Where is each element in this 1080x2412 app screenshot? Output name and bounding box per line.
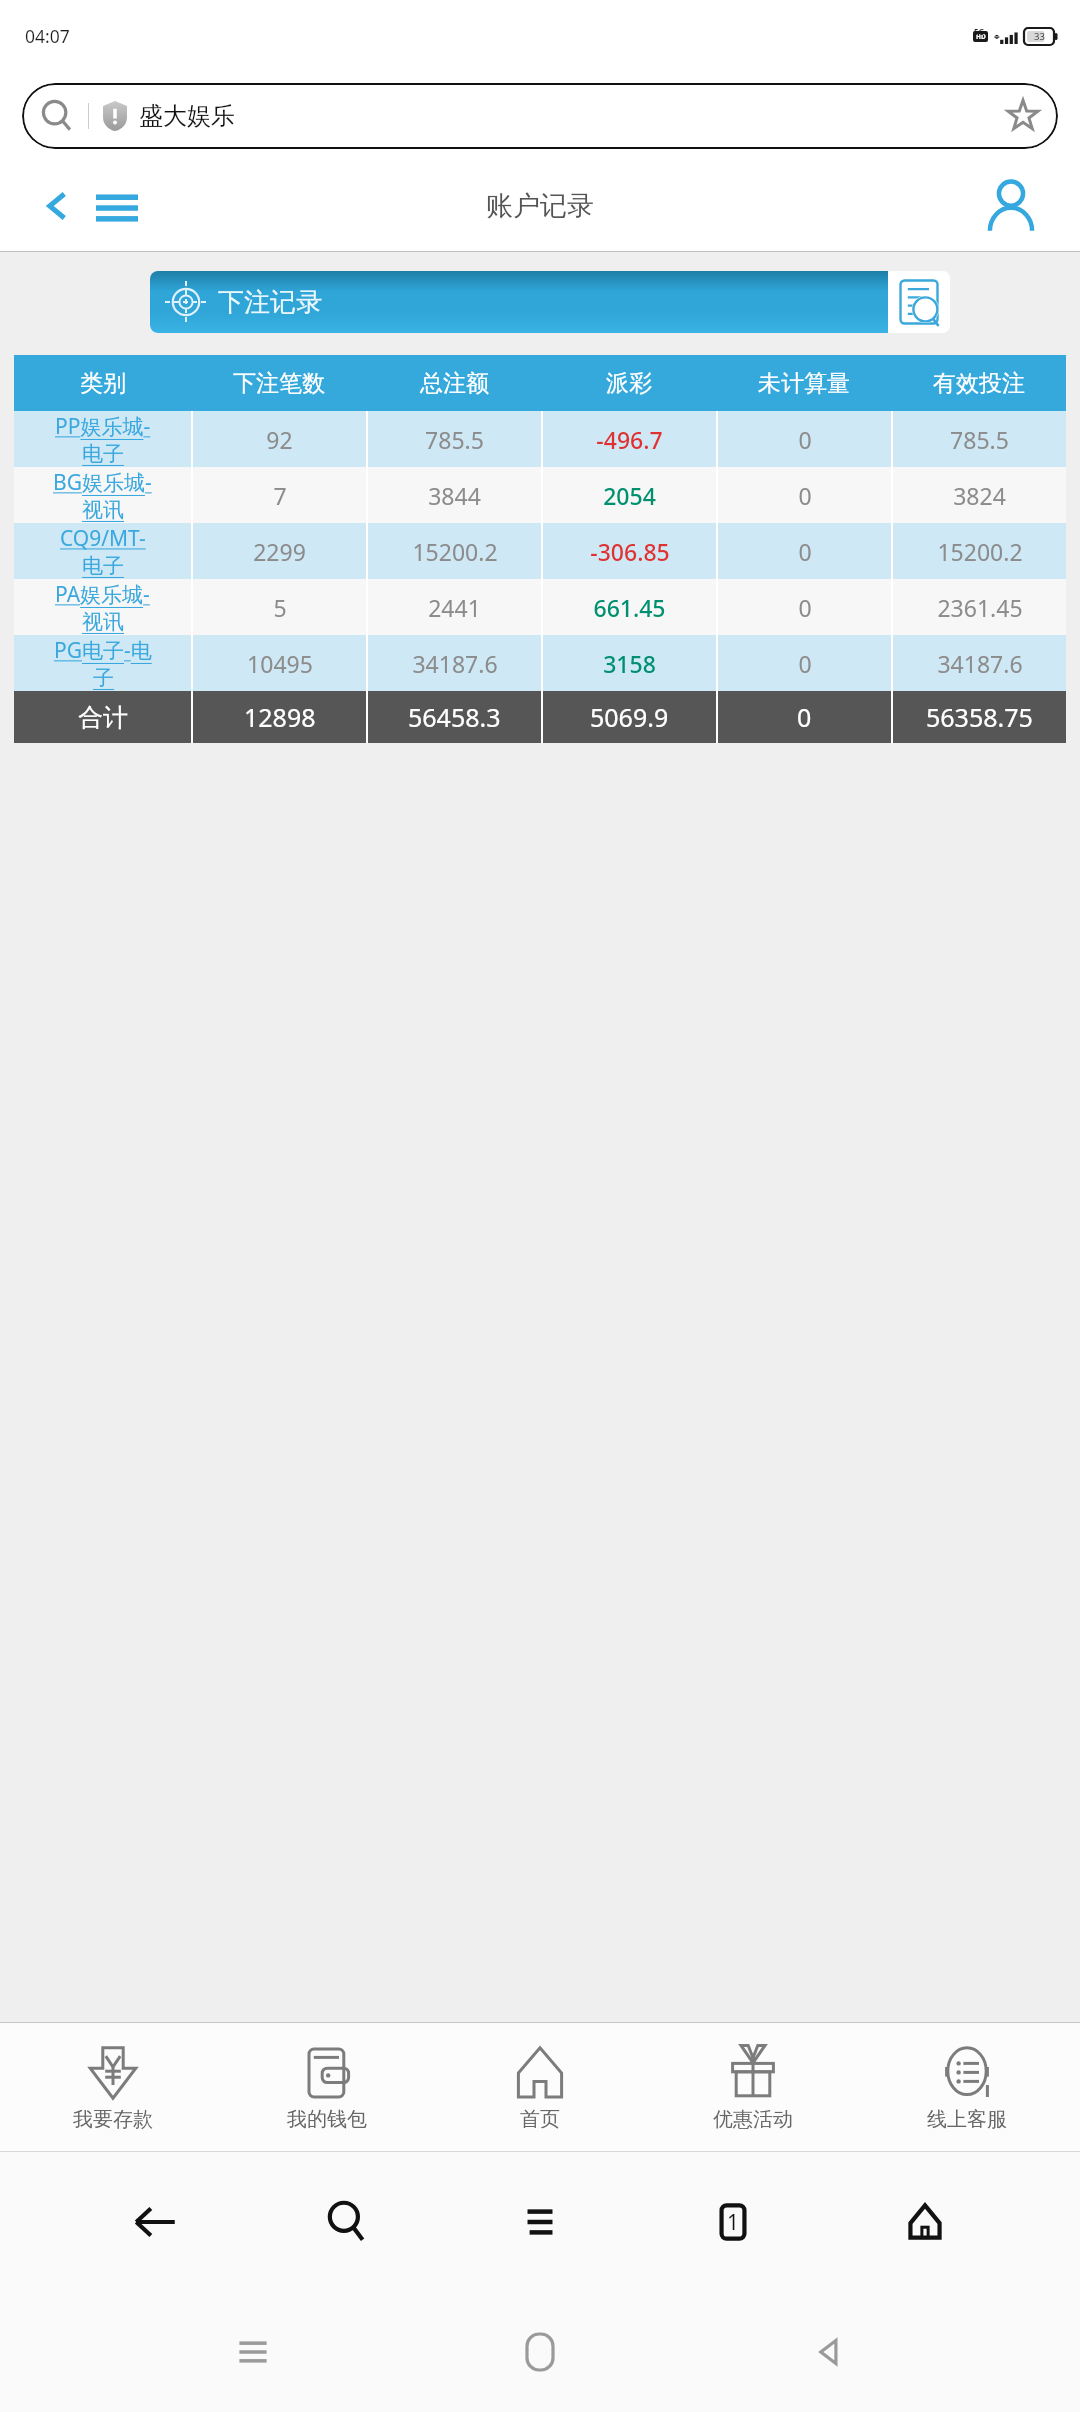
staticText: 56358.75: [926, 700, 1033, 734]
staticText: CQ9/MT-: [60, 524, 146, 553]
staticText: 56458.3: [408, 700, 501, 734]
staticText: 视讯: [82, 609, 124, 635]
button[interactable]: Back: [117, 2184, 193, 2260]
staticText: 2299: [253, 536, 306, 567]
button[interactable]: Search: [22, 83, 1058, 149]
staticText: PA娱乐城-: [55, 580, 150, 609]
staticText: 2361.45: [937, 592, 1023, 623]
button[interactable]: Back: [44, 186, 70, 226]
staticText: 15200.2: [937, 536, 1023, 567]
staticText: 15200.2: [412, 536, 498, 567]
staticText: 2441: [428, 592, 481, 623]
button[interactable]: Home: [887, 2184, 963, 2260]
button[interactable]: 下注记录: [150, 271, 950, 333]
staticText: 电子: [82, 553, 124, 579]
other: Search: [40, 99, 74, 133]
button[interactable]: Menu: [502, 2184, 578, 2260]
staticText: -496.7: [596, 424, 663, 455]
staticText: 1: [727, 2208, 740, 2237]
staticText: 视讯: [82, 497, 124, 523]
staticText: 下注笔数: [233, 369, 325, 398]
staticText: 5069.9: [590, 700, 669, 734]
staticText: 下注记录: [218, 286, 322, 319]
staticText: -306.85: [590, 536, 670, 567]
staticText: PG电子-电: [54, 636, 152, 665]
staticText: 电子: [82, 441, 124, 467]
staticText: 0: [798, 480, 812, 511]
staticText: PP娱乐城-: [55, 412, 151, 441]
staticText: 总注额: [420, 369, 489, 398]
staticText: 92: [266, 424, 293, 455]
button[interactable]: 线上客服: [867, 2037, 1067, 2138]
staticText: 34187.6: [937, 648, 1023, 679]
staticText: 785.5: [425, 424, 484, 455]
button[interactable]: Recents: [218, 2317, 288, 2387]
staticText: 0: [798, 648, 812, 679]
staticText: 我要存款: [73, 2107, 153, 2132]
staticText: 3824: [953, 480, 1006, 511]
button[interactable]: Home: [505, 2317, 575, 2387]
button[interactable]: CQ9/MT-: [14, 523, 1066, 579]
button[interactable]: 首页: [440, 2037, 640, 2138]
staticText: 类别: [80, 369, 126, 398]
staticText: 0: [798, 424, 812, 455]
button[interactable]: Back: [793, 2317, 863, 2387]
button[interactable]: BG娱乐城-: [14, 467, 1066, 523]
button[interactable]: 我的钱包: [227, 2037, 427, 2138]
staticText: 有效投注: [933, 369, 1025, 398]
staticText: 34187.6: [412, 648, 498, 679]
button[interactable]: Profile: [980, 175, 1042, 237]
staticText: 派彩: [606, 369, 652, 398]
staticText: 7: [273, 480, 287, 511]
other: Report: [899, 279, 939, 325]
staticText: 首页: [520, 2107, 560, 2132]
staticText: 线上客服: [927, 2107, 1007, 2132]
staticText: 子: [93, 665, 114, 691]
staticText: 0: [798, 536, 812, 567]
staticText: 5: [273, 592, 287, 623]
button[interactable]: Search: [309, 2184, 385, 2260]
staticText: 3158: [603, 648, 656, 679]
button[interactable]: PA娱乐城-: [14, 579, 1066, 635]
staticText: 5G: [974, 26, 985, 37]
staticText: HD: [976, 32, 986, 41]
button[interactable]: 我要存款: [13, 2037, 213, 2138]
staticText: 2054: [603, 480, 656, 511]
staticText: 未计算量: [758, 369, 850, 398]
button[interactable]: Menu: [96, 188, 138, 224]
staticText: 优惠活动: [713, 2107, 793, 2132]
staticText: 661.45: [593, 592, 666, 623]
staticText: 0: [798, 592, 812, 623]
staticText: 账户记录: [486, 189, 594, 223]
staticText: BG娱乐城-: [53, 468, 152, 497]
staticText: 0: [797, 700, 812, 734]
button[interactable]: Tabs: [695, 2184, 771, 2260]
staticText: 我的钱包: [287, 2107, 367, 2132]
button[interactable]: PP娱乐城-: [14, 411, 1066, 467]
button[interactable]: PG电子-电: [14, 635, 1066, 691]
button[interactable]: 合计: [14, 691, 1066, 743]
staticText: 合计: [78, 702, 128, 733]
staticText: 盛大娱乐: [139, 101, 235, 131]
button[interactable]: 优惠活动: [653, 2037, 853, 2138]
staticText: 3844: [428, 480, 481, 511]
staticText: 10495: [247, 648, 313, 679]
staticText: 785.5: [950, 424, 1009, 455]
button[interactable]: Bookmark: [1006, 99, 1040, 133]
staticText: 04:07: [25, 24, 70, 48]
staticText: 33: [1034, 30, 1045, 43]
staticText: 12898: [244, 700, 316, 734]
